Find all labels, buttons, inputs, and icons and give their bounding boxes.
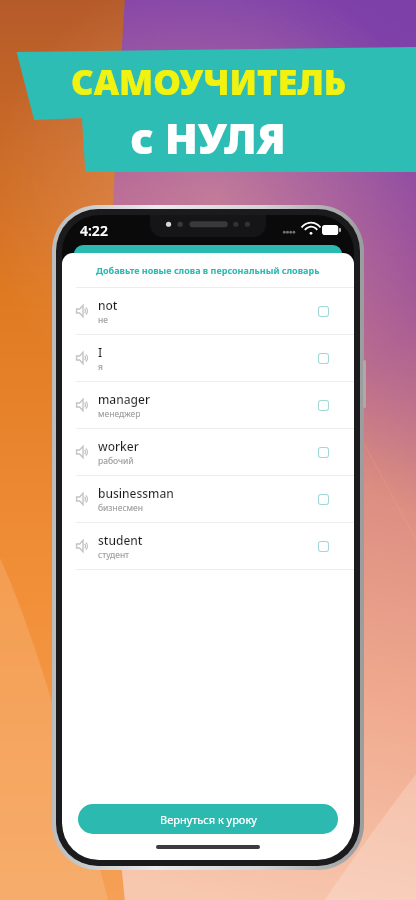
staticText: Добавьте новые слова в персональный слов…	[96, 264, 320, 276]
staticText: рабочий	[98, 455, 134, 467]
button[interactable]: Произнести I	[72, 347, 94, 369]
staticText: I	[98, 344, 103, 360]
button[interactable]: Произнести businessman	[62, 476, 354, 522]
button[interactable]: Выбрать manager	[310, 392, 336, 418]
staticText: САМОУЧИТЕЛЬ	[71, 58, 346, 106]
staticText: студент	[98, 549, 130, 561]
staticText: не	[98, 314, 108, 326]
button[interactable]: Выбрать worker	[310, 439, 336, 465]
button[interactable]: Произнести worker	[72, 441, 94, 463]
button[interactable]: Произнести worker	[62, 429, 354, 475]
button[interactable]: Произнести student	[62, 523, 354, 569]
staticText: с НУЛЯ	[130, 108, 286, 167]
button[interactable]: Произнести manager	[62, 382, 354, 428]
staticText: manager	[98, 391, 151, 407]
staticText: менеджер	[98, 408, 141, 420]
staticText: 4:22	[80, 221, 108, 240]
staticText: Вернуться к уроку	[160, 812, 257, 827]
button[interactable]: Выбрать businessman	[310, 486, 336, 512]
button[interactable]: Вернуться к уроку	[78, 804, 338, 834]
button[interactable]: Выбрать not	[310, 298, 336, 324]
staticText: businessman	[98, 485, 174, 501]
staticText: бизнесмен	[98, 502, 144, 514]
button[interactable]: Произнести manager	[72, 394, 94, 416]
button[interactable]: Произнести not	[62, 288, 354, 334]
staticText: worker	[98, 438, 139, 454]
button[interactable]: Выбрать student	[310, 533, 336, 559]
button[interactable]: Произнести not	[72, 300, 94, 322]
staticText: student	[98, 532, 143, 548]
staticText: я	[98, 361, 103, 373]
button[interactable]: Произнести student	[72, 535, 94, 557]
staticText: not	[98, 297, 118, 313]
button[interactable]: Выбрать I	[310, 345, 336, 371]
button[interactable]: Произнести I	[62, 335, 354, 381]
button[interactable]: Произнести businessman	[72, 488, 94, 510]
